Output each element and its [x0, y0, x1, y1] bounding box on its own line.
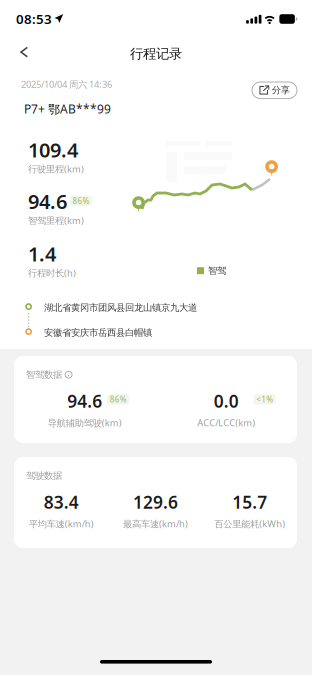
staticText: 86%: [110, 394, 127, 405]
staticText: 行程时长(h): [28, 267, 76, 279]
staticText: 驾驶数据: [26, 470, 62, 481]
staticText: 94.6: [67, 389, 102, 412]
staticText: 83.4: [44, 490, 79, 513]
staticText: 129.6: [133, 490, 178, 513]
staticText: 2025/10/04 周六 14:36: [21, 78, 112, 90]
staticText: 平均车速(km/h): [29, 517, 94, 530]
staticText: 分享: [272, 84, 290, 96]
staticText: 15.7: [232, 490, 267, 513]
staticText: 智驾里程(km): [28, 214, 84, 226]
staticText: 湖北省黄冈市团风县回龙山镇京九大道: [44, 302, 197, 313]
staticText: 导航辅助驾驶(km): [48, 416, 122, 429]
staticText: 百公里能耗(kWh): [214, 517, 285, 530]
staticText: 86%: [72, 195, 89, 206]
button[interactable]: 分享: [252, 82, 297, 98]
staticText: 0.0: [214, 389, 239, 412]
staticText: 1.4: [28, 240, 56, 267]
staticText: 智驾: [208, 265, 226, 276]
staticText: 行程记录: [130, 45, 182, 62]
staticText: 行驶里程(km): [28, 163, 84, 175]
button[interactable]: Back: [9, 39, 39, 65]
staticText: 最高车速(km/h): [123, 517, 188, 530]
staticText: 109.4: [28, 136, 78, 163]
staticText: 智驾数据: [26, 369, 62, 380]
staticText: 08:53: [16, 10, 52, 28]
staticText: 94.6: [28, 188, 67, 215]
staticText: P7+ 鄂AB***99: [24, 101, 111, 117]
staticText: 安徽省安庆市岳西县白帽镇: [44, 327, 152, 338]
staticText: <1%: [256, 394, 273, 405]
staticText: ACC/LCC(km): [197, 416, 255, 429]
